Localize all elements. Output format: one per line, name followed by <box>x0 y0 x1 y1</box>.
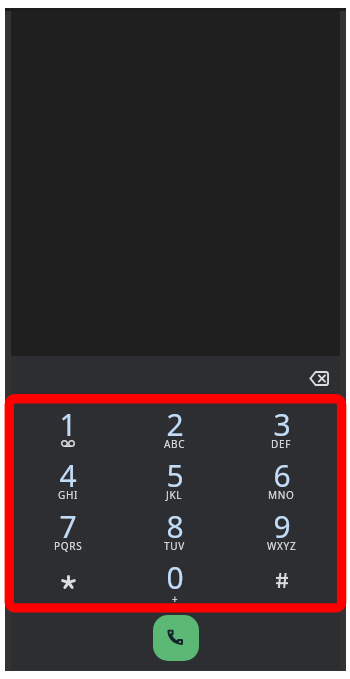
button[interactable] <box>228 552 335 603</box>
staticText: MNO <box>268 488 295 502</box>
staticText: TUV <box>164 539 185 553</box>
staticText: ABC <box>164 437 186 451</box>
staticText: PQRS <box>54 539 83 553</box>
button[interactable]: 3 <box>228 399 335 450</box>
staticText: 6 <box>273 455 291 496</box>
staticText: DEF <box>271 437 292 451</box>
staticText: 0 <box>166 557 184 598</box>
staticText: 9 <box>273 506 291 547</box>
staticText: 1 <box>59 404 77 445</box>
button[interactable]: 8 <box>121 501 228 552</box>
staticText: 8 <box>166 506 184 547</box>
button[interactable]: 9 <box>228 501 335 552</box>
button[interactable] <box>15 552 121 603</box>
staticText: + <box>172 592 178 606</box>
staticText: 4 <box>59 455 77 496</box>
button[interactable]: 5 <box>121 450 228 501</box>
button[interactable]: 1 <box>15 399 121 450</box>
staticText: JKL <box>166 488 183 502</box>
button[interactable]: Backspace <box>304 363 334 393</box>
staticText: 5 <box>166 455 184 496</box>
staticText: 2 <box>166 404 184 445</box>
button[interactable]: 2 <box>121 399 228 450</box>
button[interactable]: 6 <box>228 450 335 501</box>
button[interactable]: 7 <box>15 501 121 552</box>
staticText: GHI <box>58 488 79 502</box>
staticText: WXYZ <box>267 539 297 553</box>
button[interactable]: 0 <box>121 552 228 603</box>
button[interactable]: Call <box>153 615 199 661</box>
staticText: 7 <box>59 506 77 547</box>
staticText: 3 <box>273 404 291 445</box>
button[interactable]: 4 <box>15 450 121 501</box>
